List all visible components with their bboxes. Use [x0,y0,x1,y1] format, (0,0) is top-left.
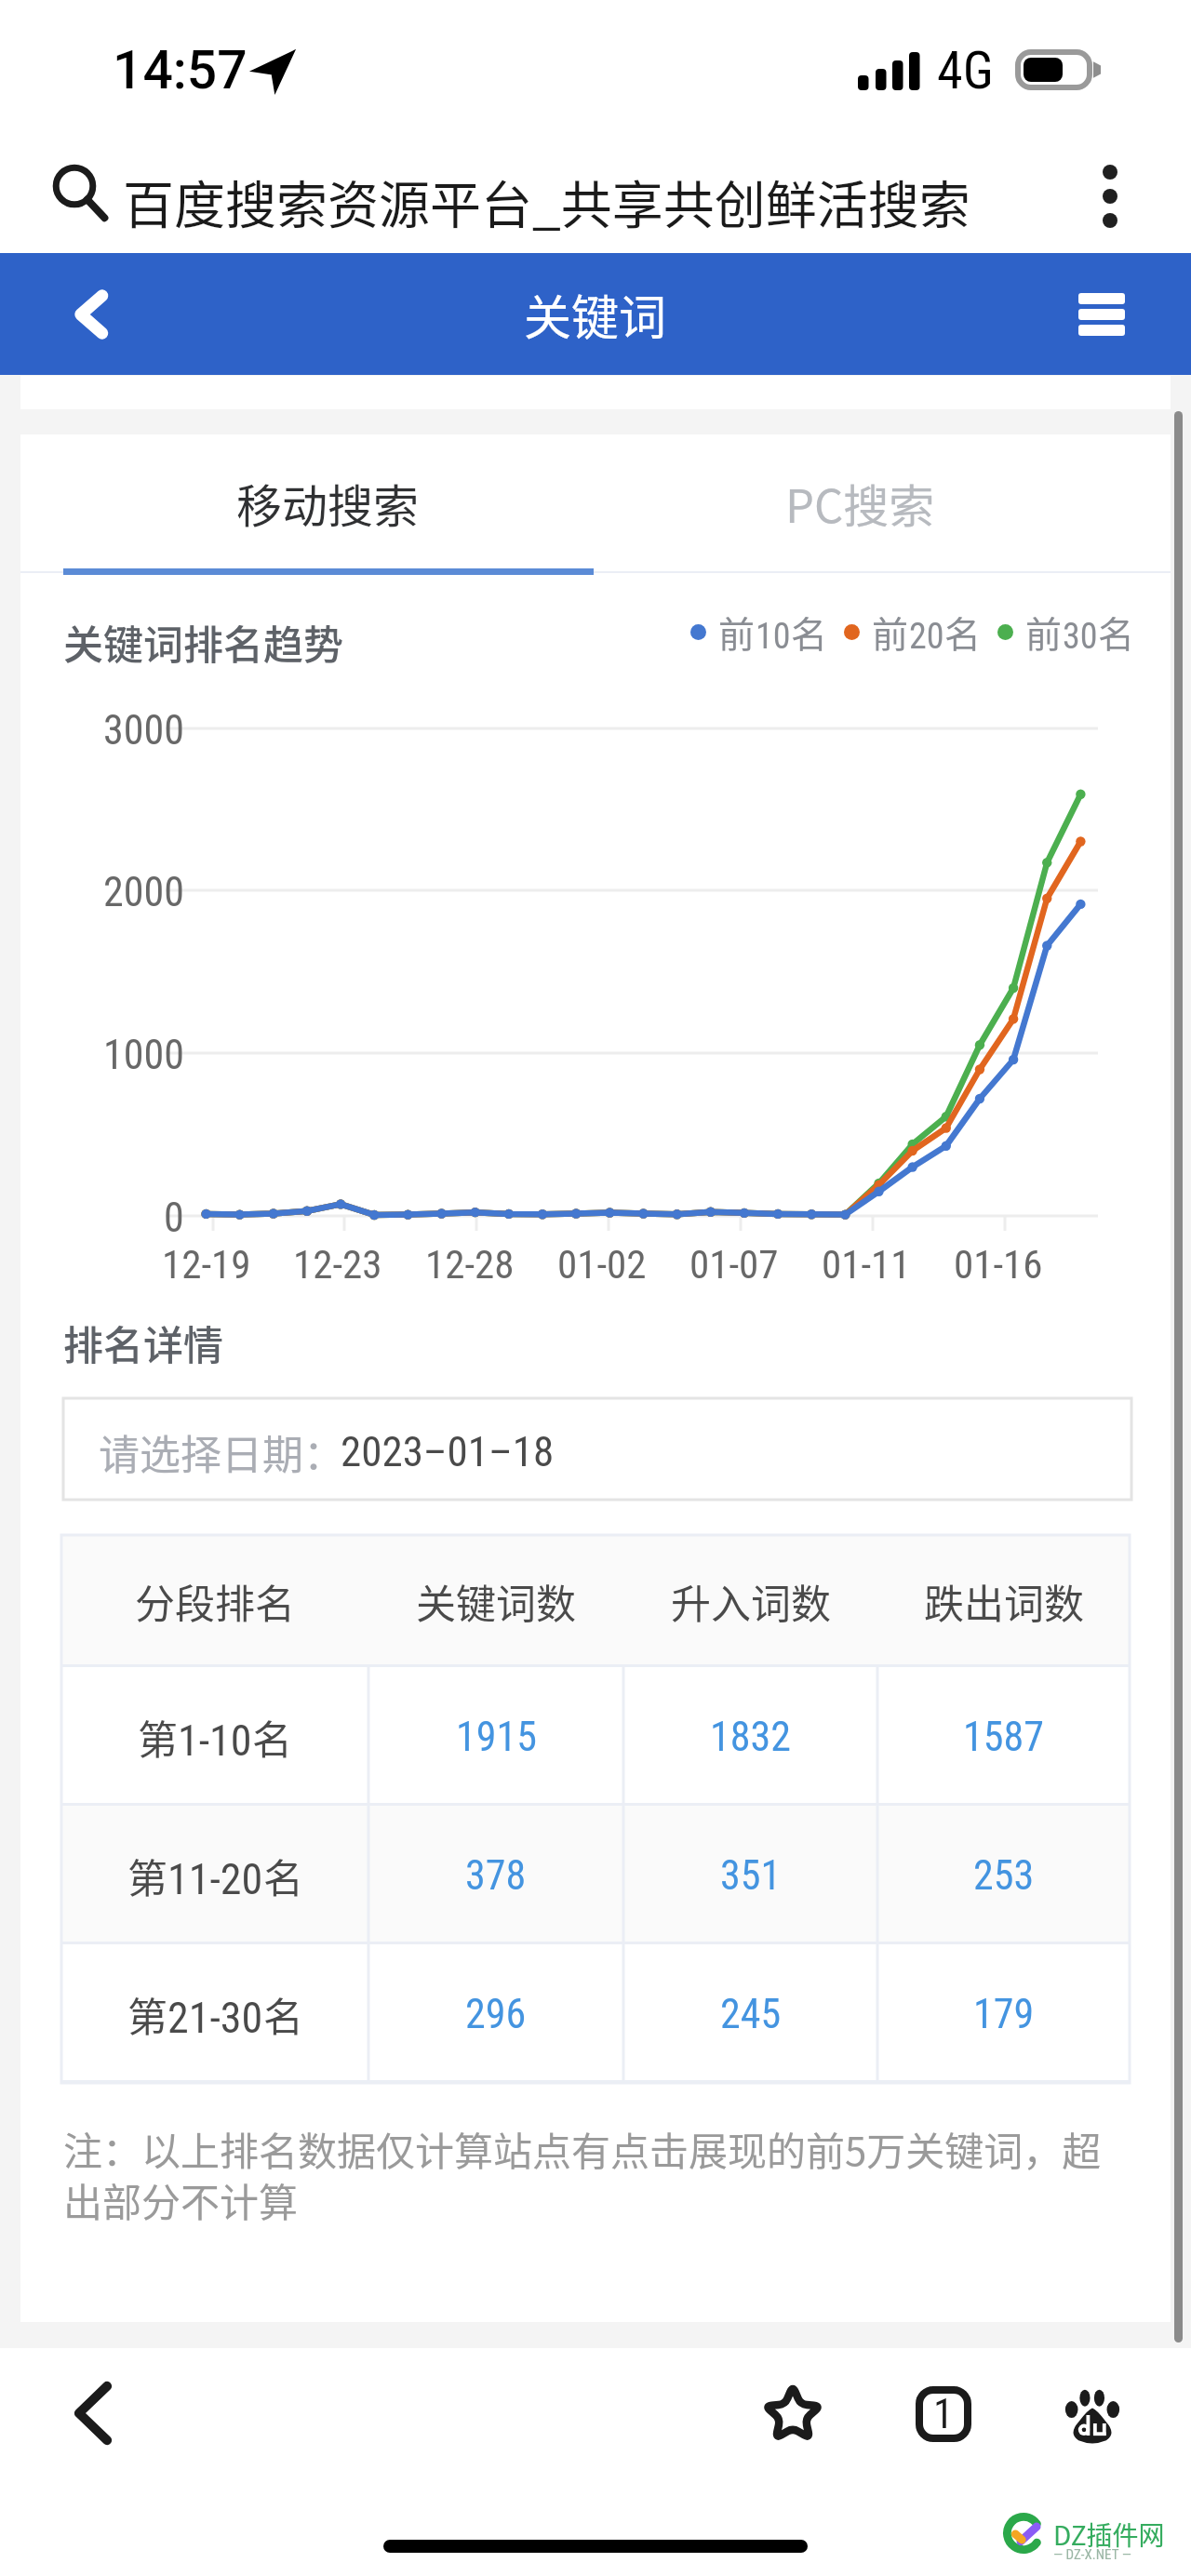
staticText: 名 [263,1847,303,1904]
staticText: 移动搜索 [236,470,420,536]
staticText: 11-20 [167,1854,263,1904]
staticText: 前 [872,606,909,658]
staticText: DZ插件网 [1053,2516,1165,2554]
staticText: 排名详情 [63,1314,223,1371]
staticText: 12-19 [162,1241,251,1288]
staticText: 21-30 [167,1993,263,2043]
staticText: 跌出词数 [924,1572,1084,1630]
staticText: 名 [791,606,828,658]
staticText: 名 [944,606,982,658]
staticText: 30 [1063,616,1098,658]
button[interactable]: PC搜索 [594,434,1126,571]
staticText: 关键词 [524,280,667,349]
button[interactable]: 请选择日期： [63,1398,1131,1500]
staticText: 前 [1025,606,1063,658]
staticText: 关键词数 [416,1572,576,1630]
button[interactable]: Baidu [1041,2364,1144,2466]
staticText: 名 [1098,606,1135,658]
staticText: 10 [756,616,791,658]
staticText: 1 [933,2390,954,2438]
staticText: 0 [164,1194,184,1242]
staticText: 351 [720,1851,782,1900]
staticText: 注：以上排名数据仅计算站点有点击展现的前5万关键词，超出部分不计算 [63,2120,1124,2228]
staticText: 01-02 [557,1241,647,1288]
staticText: 名 [252,1708,292,1766]
button[interactable]: Back [48,272,134,357]
staticText: 1000 [103,1031,184,1079]
button[interactable]: More options [1068,154,1152,238]
staticText: 12-28 [425,1241,515,1288]
staticText: 第 [127,1985,167,2043]
staticText: 1832 [710,1713,791,1761]
staticText: 分段排名 [135,1572,295,1630]
staticText: 378 [465,1851,527,1900]
staticText: 名 [263,1985,303,2043]
staticText: PC搜索 [785,470,935,536]
staticText: 关键词排名趋势 [63,613,343,671]
staticText: 1-10 [178,1715,252,1766]
staticText: 请选择日期： [99,1422,344,1482]
button[interactable]: Tabs [892,2363,995,2465]
staticText: 01-11 [822,1241,911,1288]
staticText: 14:57 [113,39,248,101]
staticText: 3000 [103,706,184,754]
staticText: 20 [909,616,944,658]
staticText: 245 [720,1990,782,2038]
staticText: 179 [973,1990,1035,2038]
staticText: 百度搜索资源平台_共享共创鲜活搜索 [123,164,970,238]
staticText: 第 [138,1708,178,1766]
staticText: 升入词数 [671,1572,831,1630]
staticText: 253 [973,1851,1035,1900]
staticText: 12-23 [293,1241,382,1288]
staticText: 1587 [963,1713,1044,1761]
button[interactable]: Back [42,2362,144,2464]
staticText: 4G [937,40,994,101]
staticText: — DZ-X.NET — [1053,2546,1131,2563]
staticText: 2023–01–18 [341,1427,555,1476]
staticText: 01-16 [954,1241,1043,1288]
staticText: 2000 [103,868,184,916]
staticText: 1915 [456,1713,537,1761]
button[interactable]: 移动搜索 [61,434,594,571]
staticText: 01-07 [689,1241,779,1288]
button[interactable]: Favorite [742,2362,844,2464]
staticText: 第 [127,1847,167,1904]
staticText: 前 [718,606,756,658]
button[interactable]: Menu [1059,272,1144,357]
staticText: 296 [465,1990,527,2038]
